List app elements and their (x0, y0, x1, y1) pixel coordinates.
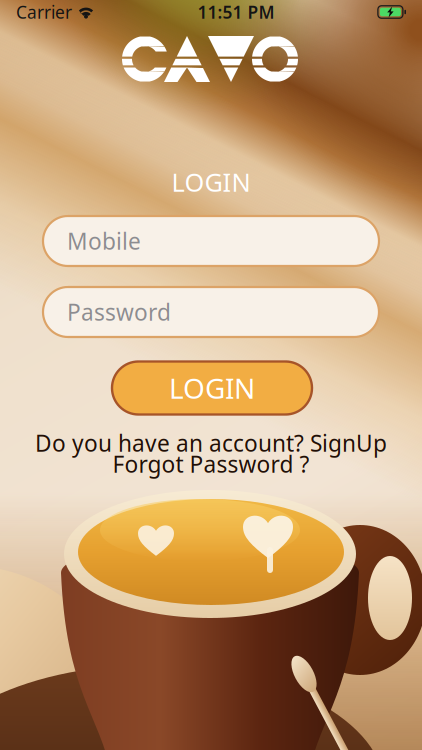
staticText: LOGIN (169, 369, 255, 407)
staticText: Do you have an account? SignUp (35, 428, 387, 458)
staticText: Carrier (16, 0, 72, 23)
button[interactable]: Password (43, 287, 379, 337)
staticText: LOGIN (171, 165, 250, 199)
button[interactable]: Mobile (43, 216, 379, 266)
staticText: Password (67, 297, 171, 327)
button[interactable]: Forgot Password ? (112, 449, 309, 479)
staticText: Mobile (67, 226, 141, 256)
staticText: Forgot Password ? (112, 449, 309, 479)
button[interactable]: LOGIN (112, 361, 312, 414)
button[interactable]: Do you have an account? SignUp (35, 428, 387, 458)
staticText: 11:51 PM (197, 0, 274, 23)
